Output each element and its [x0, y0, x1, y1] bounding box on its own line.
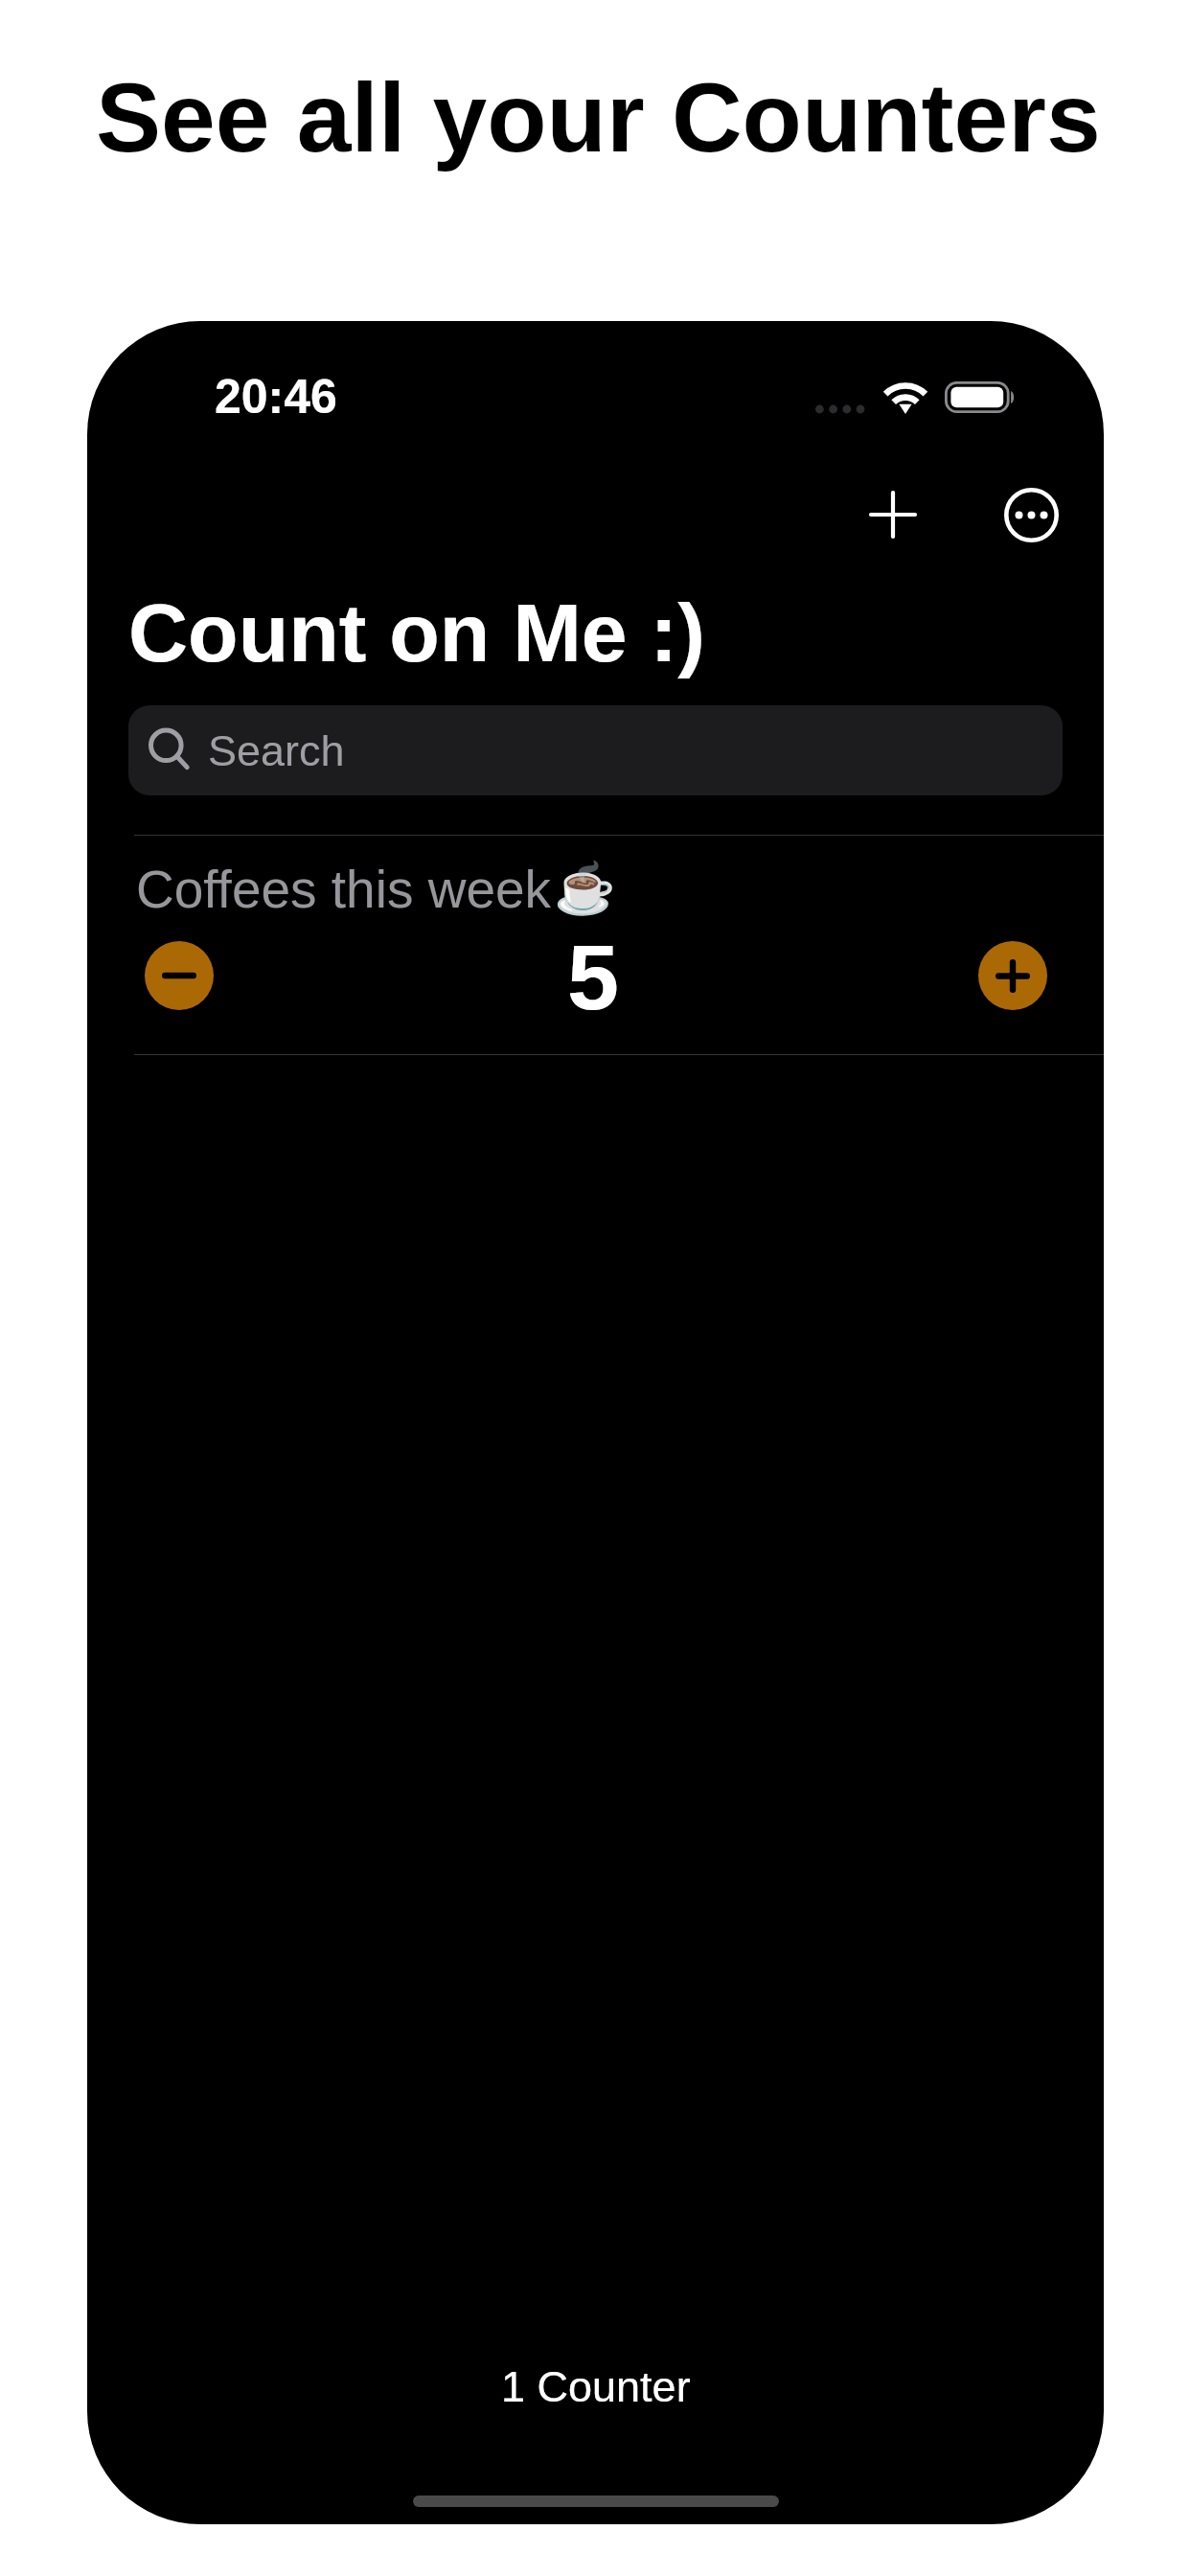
- button[interactable]: Decrement counter: [145, 941, 214, 1010]
- button[interactable]: Coffees this week: [87, 836, 1104, 1055]
- staticText: Search: [208, 726, 345, 774]
- button[interactable]: More options: [989, 472, 1073, 557]
- staticText: Count on Me :): [128, 586, 705, 678]
- button[interactable]: Add counter: [851, 472, 935, 557]
- staticText: 20:46: [215, 370, 337, 424]
- button[interactable]: Search: [128, 705, 1063, 795]
- staticText: See all your Counters: [96, 63, 1101, 172]
- staticText: 1 Counter: [501, 2362, 691, 2410]
- staticText: ☕: [554, 860, 616, 918]
- staticText: Coffees this week: [136, 860, 552, 918]
- button[interactable]: Increment counter: [978, 941, 1047, 1010]
- staticText: 5: [567, 925, 619, 1011]
